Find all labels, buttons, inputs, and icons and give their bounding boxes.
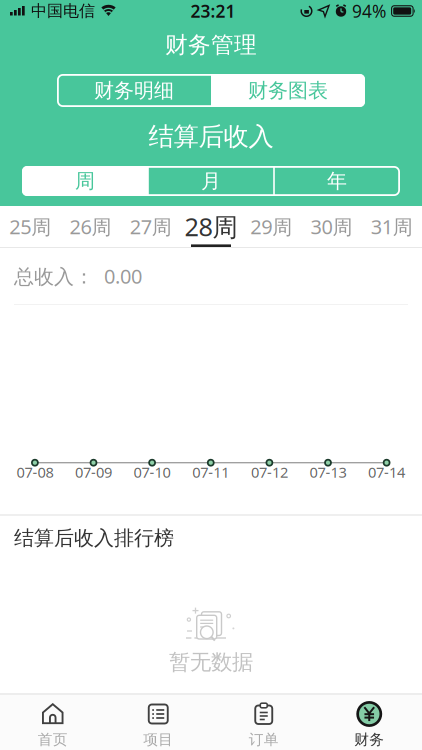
staticText: 结算后收入排行榜 xyxy=(14,526,174,550)
staticText: 财务明细 xyxy=(94,78,174,103)
button[interactable]: 财务明细 xyxy=(57,74,211,107)
staticText: 年 xyxy=(327,169,347,193)
staticText: 周 xyxy=(75,169,95,193)
staticText: 中国电信 xyxy=(31,1,95,21)
button[interactable]: 项目 xyxy=(105,694,211,750)
staticText: 总收入： 0.00 xyxy=(14,263,142,289)
button[interactable]: 财务 xyxy=(316,694,422,750)
button[interactable]: 月 xyxy=(148,166,274,196)
staticText: 94% xyxy=(352,0,386,22)
staticText: 07-09 xyxy=(75,462,112,482)
staticText: 结算后收入 xyxy=(148,121,273,152)
button[interactable]: 30周 xyxy=(301,206,362,247)
staticText: 07-12 xyxy=(251,462,288,482)
button[interactable]: 25周 xyxy=(0,206,60,247)
staticText: 财务管理 xyxy=(165,31,257,59)
button[interactable]: 29周 xyxy=(241,206,301,247)
staticText: 07-08 xyxy=(16,462,53,482)
staticText: 07-13 xyxy=(309,462,346,482)
button[interactable]: 27周 xyxy=(121,206,181,247)
button[interactable]: 周 xyxy=(22,166,148,196)
staticText: 07-11 xyxy=(192,462,229,482)
staticText: 首页 xyxy=(38,730,68,748)
button[interactable]: 28周 xyxy=(181,206,241,247)
staticText: 31周 xyxy=(371,213,413,240)
staticText: 财务图表 xyxy=(248,78,328,103)
button[interactable]: 26周 xyxy=(60,206,121,247)
staticText: 订单 xyxy=(249,730,279,748)
staticText: 27周 xyxy=(130,213,172,240)
staticText: 07-14 xyxy=(368,462,405,482)
staticText: 30周 xyxy=(311,213,353,240)
staticText: 07-10 xyxy=(134,462,171,482)
button[interactable]: 首页 xyxy=(0,694,105,750)
staticText: 25周 xyxy=(9,213,51,240)
staticText: 29周 xyxy=(250,213,292,240)
staticText: 月 xyxy=(201,169,221,193)
staticText: 财务 xyxy=(354,730,384,748)
button[interactable]: 年 xyxy=(274,166,400,196)
staticText: 暂无数据 xyxy=(169,649,253,675)
staticText: 28周 xyxy=(184,210,237,243)
staticText: 项目 xyxy=(143,730,173,748)
staticText: 23:21 xyxy=(190,0,235,22)
button[interactable]: 31周 xyxy=(362,206,422,247)
button[interactable]: 财务图表 xyxy=(211,74,365,107)
staticText: 26周 xyxy=(69,213,111,240)
button[interactable]: 订单 xyxy=(211,694,316,750)
